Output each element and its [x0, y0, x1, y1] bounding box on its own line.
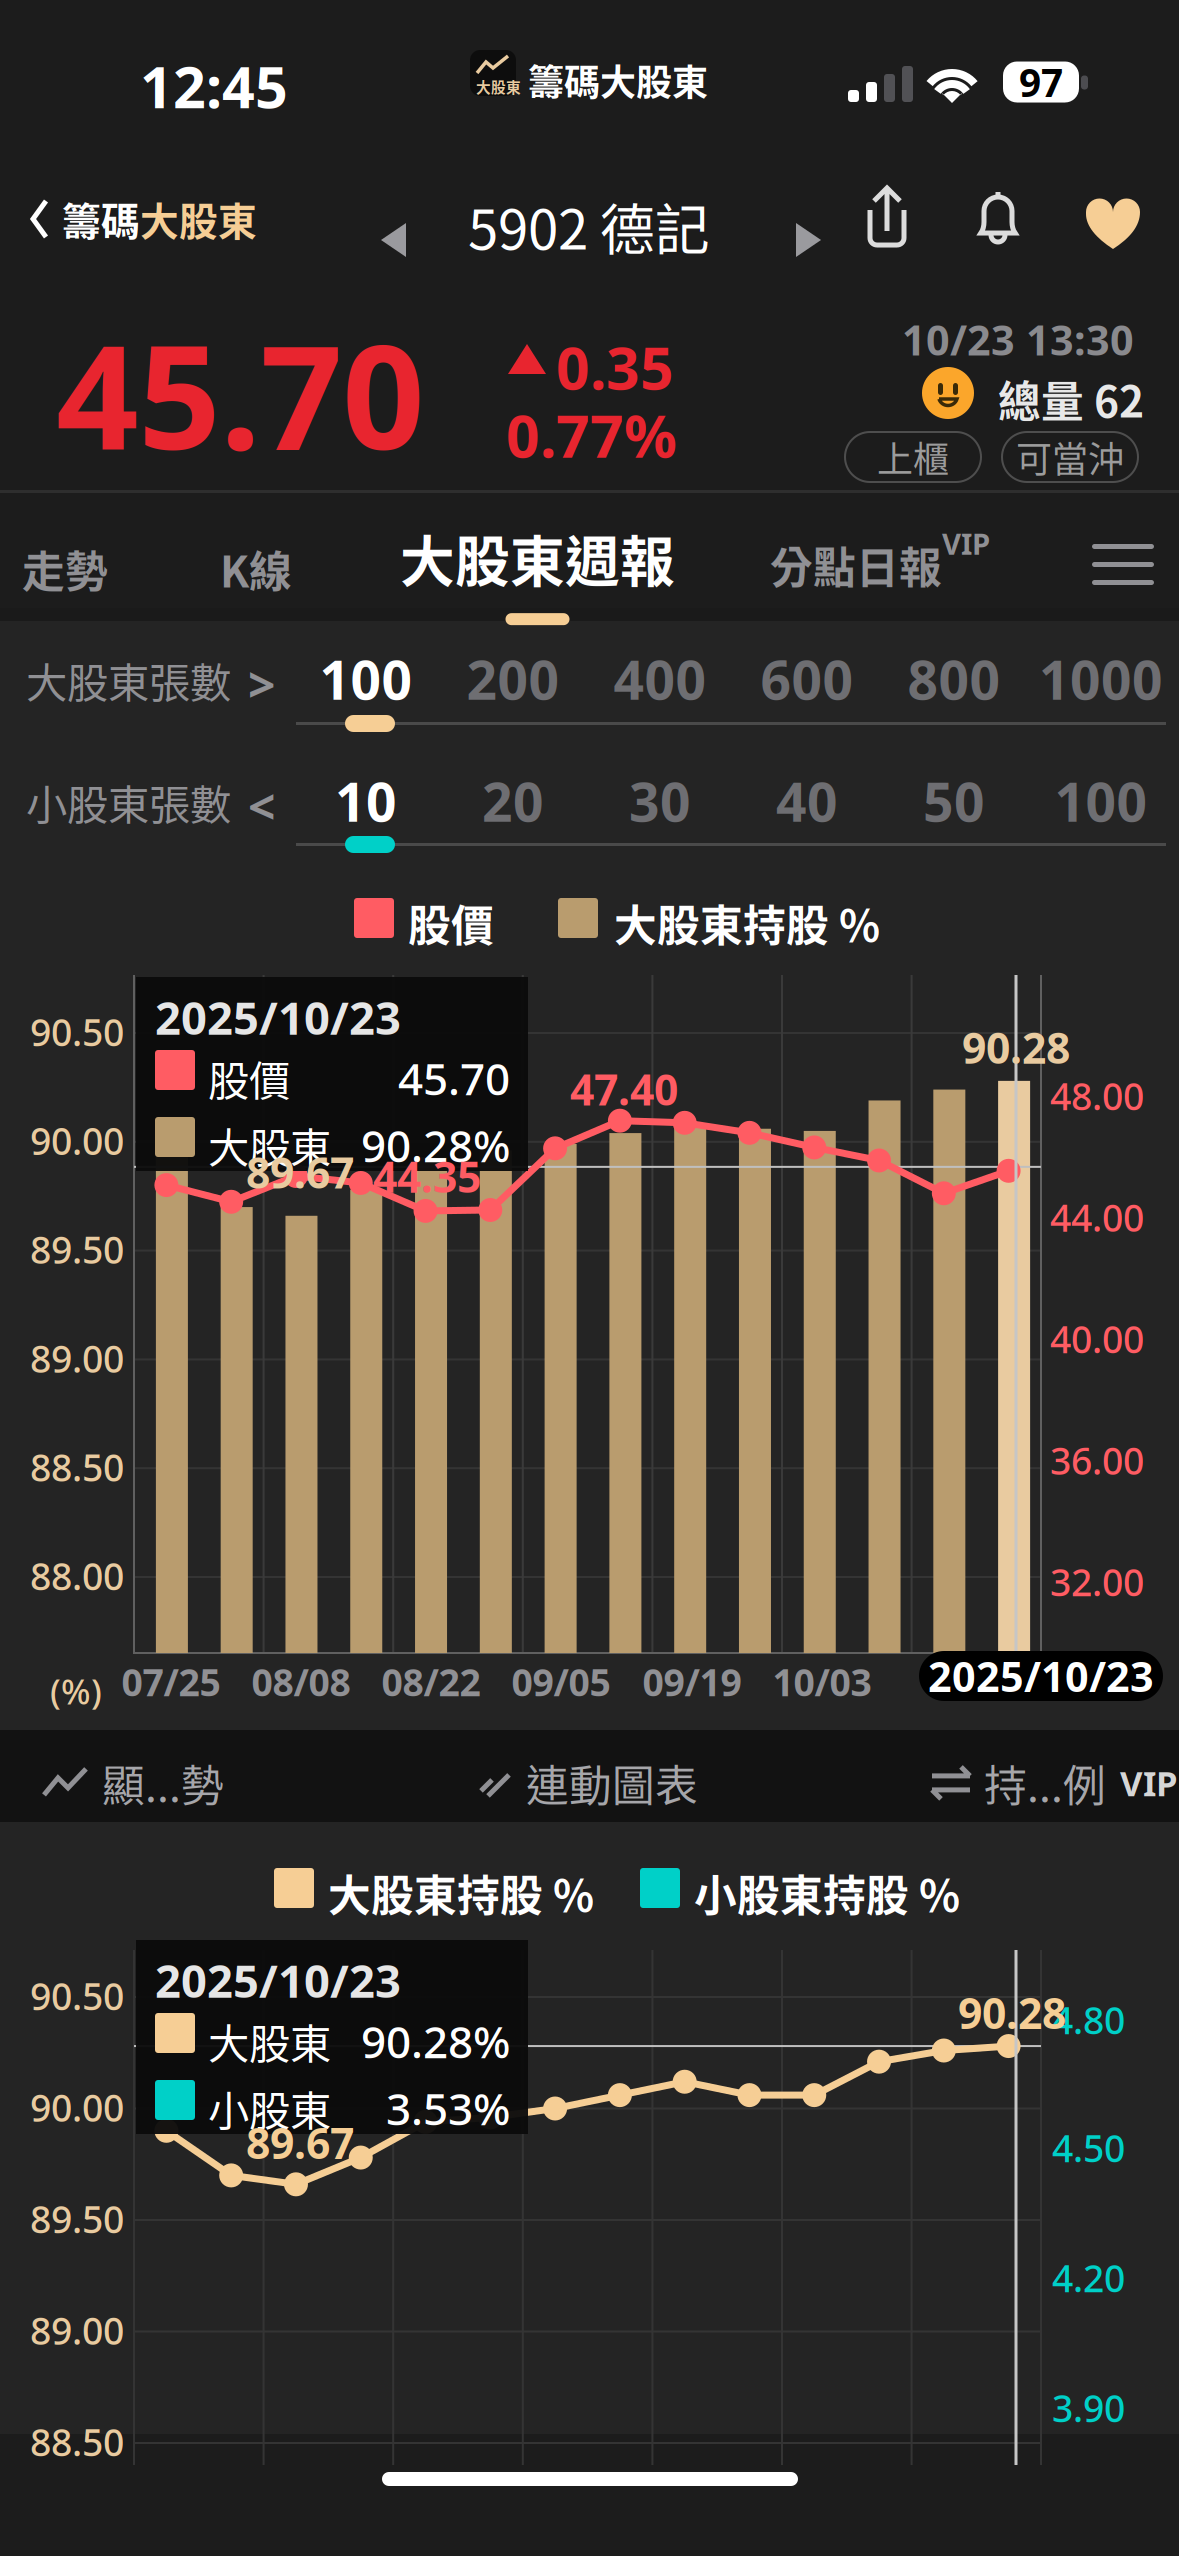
staticText: 90.28	[962, 1019, 1070, 1076]
button[interactable]: More	[1082, 534, 1164, 595]
staticText: 大股東	[208, 2011, 331, 2071]
button[interactable]: Share	[862, 184, 912, 248]
staticText: 100	[319, 644, 412, 714]
staticText: VIP	[942, 524, 990, 563]
button[interactable]: 800	[874, 644, 1034, 714]
staticText: 48.00	[1050, 1071, 1144, 1121]
button[interactable]: 100	[286, 644, 446, 714]
staticText: 90.28%	[361, 1116, 510, 1174]
staticText: 45.70	[56, 298, 424, 489]
button[interactable]: Favorite	[1084, 196, 1142, 252]
staticText: 36.00	[1050, 1435, 1144, 1485]
button[interactable]: 400	[580, 644, 740, 714]
staticText: 10	[335, 766, 397, 836]
button[interactable]: 600	[727, 644, 887, 714]
button[interactable]: 50	[874, 766, 1034, 836]
staticText: 08/08	[251, 1657, 350, 1707]
staticText: 大股東	[476, 76, 521, 97]
button[interactable]: K線	[206, 524, 306, 614]
staticText: 32.00	[1050, 1557, 1144, 1607]
staticText: 89.50	[30, 1225, 124, 1274]
staticText: 持...例	[984, 1752, 1106, 1814]
staticText: 800	[907, 644, 1000, 714]
staticText: 90.50	[30, 1007, 124, 1057]
staticText: 89.00	[30, 1333, 124, 1383]
staticText: 大股東持股 %	[614, 892, 880, 954]
staticText: 600	[760, 644, 853, 714]
button[interactable]: 走勢	[8, 524, 122, 614]
staticText: 走勢	[22, 538, 108, 600]
staticText: 89.00	[30, 2305, 124, 2355]
button[interactable]: 40	[727, 766, 887, 836]
staticText: 0.77%	[506, 396, 677, 474]
staticText: 大股東週報	[400, 518, 675, 597]
button[interactable]: 籌碼	[4, 175, 257, 263]
staticText: 5902 德記	[468, 186, 710, 265]
button[interactable]: 持...例	[930, 1752, 1178, 1814]
staticText: 47.40	[570, 1061, 678, 1117]
staticText: 44.35	[373, 1148, 481, 1205]
staticText: 88.50	[30, 1442, 124, 1492]
staticText: 30	[629, 766, 691, 836]
staticText: 12:45	[140, 48, 288, 124]
staticText: 總量 62	[998, 368, 1144, 430]
staticText: 50	[923, 766, 985, 836]
staticText: 89.67	[246, 2114, 354, 2171]
staticText: 分點日報	[770, 534, 942, 596]
staticText: 小股東	[208, 2078, 331, 2138]
staticText: 09/05	[511, 1657, 610, 1707]
staticText: VIP	[1120, 1760, 1178, 1806]
button[interactable]: 分點日報	[770, 522, 990, 608]
staticText: 89.67	[246, 1144, 354, 1200]
staticText: 09/19	[642, 1657, 741, 1707]
staticText: 89.50	[30, 2194, 124, 2244]
staticText: 88.50	[30, 2417, 124, 2467]
button[interactable]: 200	[433, 644, 593, 714]
staticText: 4.80	[1052, 1995, 1125, 2045]
staticText: 10/03	[772, 1657, 871, 1707]
staticText: 4.50	[1052, 2123, 1125, 2173]
staticText: 3.90	[1052, 2383, 1125, 2433]
staticText: 連動圖表	[526, 1752, 698, 1814]
button[interactable]: 30	[580, 766, 740, 836]
staticText: 100	[1054, 766, 1147, 836]
staticText: >	[248, 652, 275, 716]
staticText: K線	[220, 538, 292, 600]
staticText: 90.28	[958, 1984, 1066, 2041]
staticText: 90.00	[30, 1116, 124, 1165]
button[interactable]: 100	[1021, 766, 1179, 836]
staticText: 2025/10/23	[155, 1950, 401, 2010]
staticText: 0.35	[556, 328, 674, 406]
staticText: 44.00	[1050, 1192, 1144, 1242]
button[interactable]: 10	[286, 766, 446, 836]
staticText: 小股東持股 %	[694, 1862, 960, 1924]
staticText: 大股東持股 %	[328, 1862, 594, 1924]
button[interactable]: 可當沖	[1002, 432, 1138, 482]
button[interactable]: Next stock	[778, 206, 838, 274]
staticText: 08/22	[381, 1657, 480, 1707]
button[interactable]: Previous stock	[364, 206, 424, 274]
button[interactable]: 20	[433, 766, 593, 836]
staticText: 10/23 13:30	[902, 312, 1134, 367]
button[interactable]: 連動圖表	[474, 1752, 698, 1814]
staticText: 2025/10/23	[155, 987, 401, 1047]
button[interactable]: 1000	[1021, 644, 1179, 714]
staticText: 40	[776, 766, 838, 836]
staticText: 40.00	[1050, 1314, 1144, 1364]
button[interactable]: 顯...勢	[42, 1752, 224, 1814]
staticText: 20	[482, 766, 544, 836]
staticText: 上櫃	[877, 431, 949, 483]
button[interactable]: 上櫃	[845, 432, 981, 482]
staticText: 3.53%	[386, 2079, 510, 2137]
button[interactable]: Alerts	[972, 186, 1026, 250]
staticText: 大股東	[140, 191, 257, 247]
staticText: 籌碼大股東	[528, 54, 708, 106]
staticText: 可當沖	[1016, 431, 1124, 483]
staticText: (%)	[50, 1668, 102, 1714]
staticText: 90.50	[30, 1971, 124, 2021]
staticText: 1000	[1039, 644, 1163, 714]
staticText: 97	[1019, 56, 1063, 108]
button[interactable]: 大股東週報	[390, 518, 685, 625]
staticText: 大股東	[208, 1115, 331, 1175]
staticText: 400	[613, 644, 706, 714]
